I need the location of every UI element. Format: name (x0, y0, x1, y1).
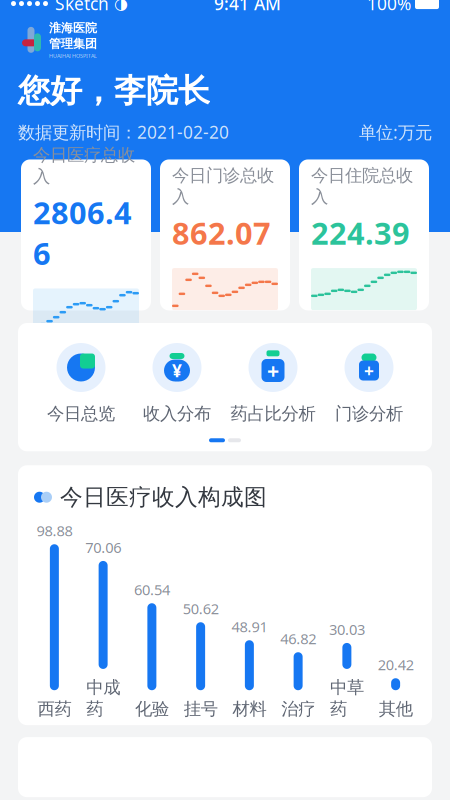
staticText: 98.88 (36, 521, 72, 540)
button[interactable]: 今日医疗总收入 (21, 159, 151, 310)
staticText: 20.42 (378, 655, 414, 674)
staticText: 862.07 (172, 212, 271, 253)
staticText: 中草药 (330, 677, 364, 719)
staticText: ◑ (114, 0, 128, 13)
staticText: 中成药 (86, 677, 120, 719)
staticText: ¥ (172, 359, 182, 382)
staticText: 今日门诊总收入 (172, 165, 274, 207)
staticText: 30.03 (329, 619, 365, 639)
staticText: 材料 (232, 698, 266, 719)
button[interactable]: 今日门诊总收入 (160, 159, 290, 310)
button[interactable]: 今日住院总收入 (299, 159, 429, 310)
staticText: 今日医疗收入构成图 (60, 483, 267, 511)
staticText: 收入分布 (143, 403, 211, 424)
staticText: 46.82 (280, 629, 316, 648)
staticText: 淮海医院 (49, 21, 97, 35)
staticText: + (364, 359, 374, 382)
staticText: 60.54 (134, 580, 170, 599)
staticText: 9:41 AM (214, 0, 281, 15)
staticText: 今日医疗总收入 (33, 144, 135, 187)
staticText: Sketch (55, 0, 109, 15)
staticText: 其他 (379, 698, 413, 719)
staticText: 门诊分析 (335, 403, 403, 424)
staticText: 224.39 (311, 212, 410, 253)
staticText: 管理集团 (49, 36, 97, 51)
staticText: 100% (367, 0, 411, 15)
staticText: HUAIHAI HOSPITAL (49, 52, 97, 59)
staticText: 48.91 (231, 617, 267, 636)
staticText: + (267, 356, 279, 385)
button[interactable]: ¥ (129, 343, 225, 424)
staticText: 50.62 (183, 599, 219, 618)
staticText: 挂号 (184, 698, 218, 719)
button[interactable]: 今日总览 (33, 343, 129, 424)
button[interactable]: + (321, 343, 417, 424)
staticText: 70.06 (85, 537, 121, 557)
staticText: 治疗 (281, 698, 315, 719)
staticText: 药占比分析 (230, 403, 315, 424)
staticText: 您好，李院长 (18, 71, 210, 110)
staticText: 2806.46 (33, 192, 132, 273)
staticText: 西药 (37, 698, 71, 719)
staticText: 今日总览 (47, 403, 115, 424)
staticText: 数据更新时间：2021-02-20 (18, 120, 229, 143)
staticText: 单位:万元 (359, 120, 432, 143)
staticText: 今日住院总收入 (311, 165, 413, 207)
button[interactable]: + (225, 343, 321, 424)
staticText: 化验 (135, 698, 169, 719)
